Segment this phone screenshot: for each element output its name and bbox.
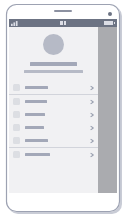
other: Open xyxy=(90,125,94,131)
button[interactable]: Open xyxy=(9,95,98,108)
button[interactable]: Open xyxy=(9,81,98,94)
button[interactable]: Open xyxy=(9,148,98,161)
button[interactable]: Open xyxy=(9,121,98,134)
button[interactable]: Open xyxy=(9,134,98,147)
other: Open xyxy=(90,112,94,118)
other: Open xyxy=(90,99,94,105)
other: Open xyxy=(90,85,94,91)
other: Open xyxy=(90,138,94,144)
button[interactable]: Open xyxy=(9,108,98,121)
other: Open xyxy=(90,152,94,158)
